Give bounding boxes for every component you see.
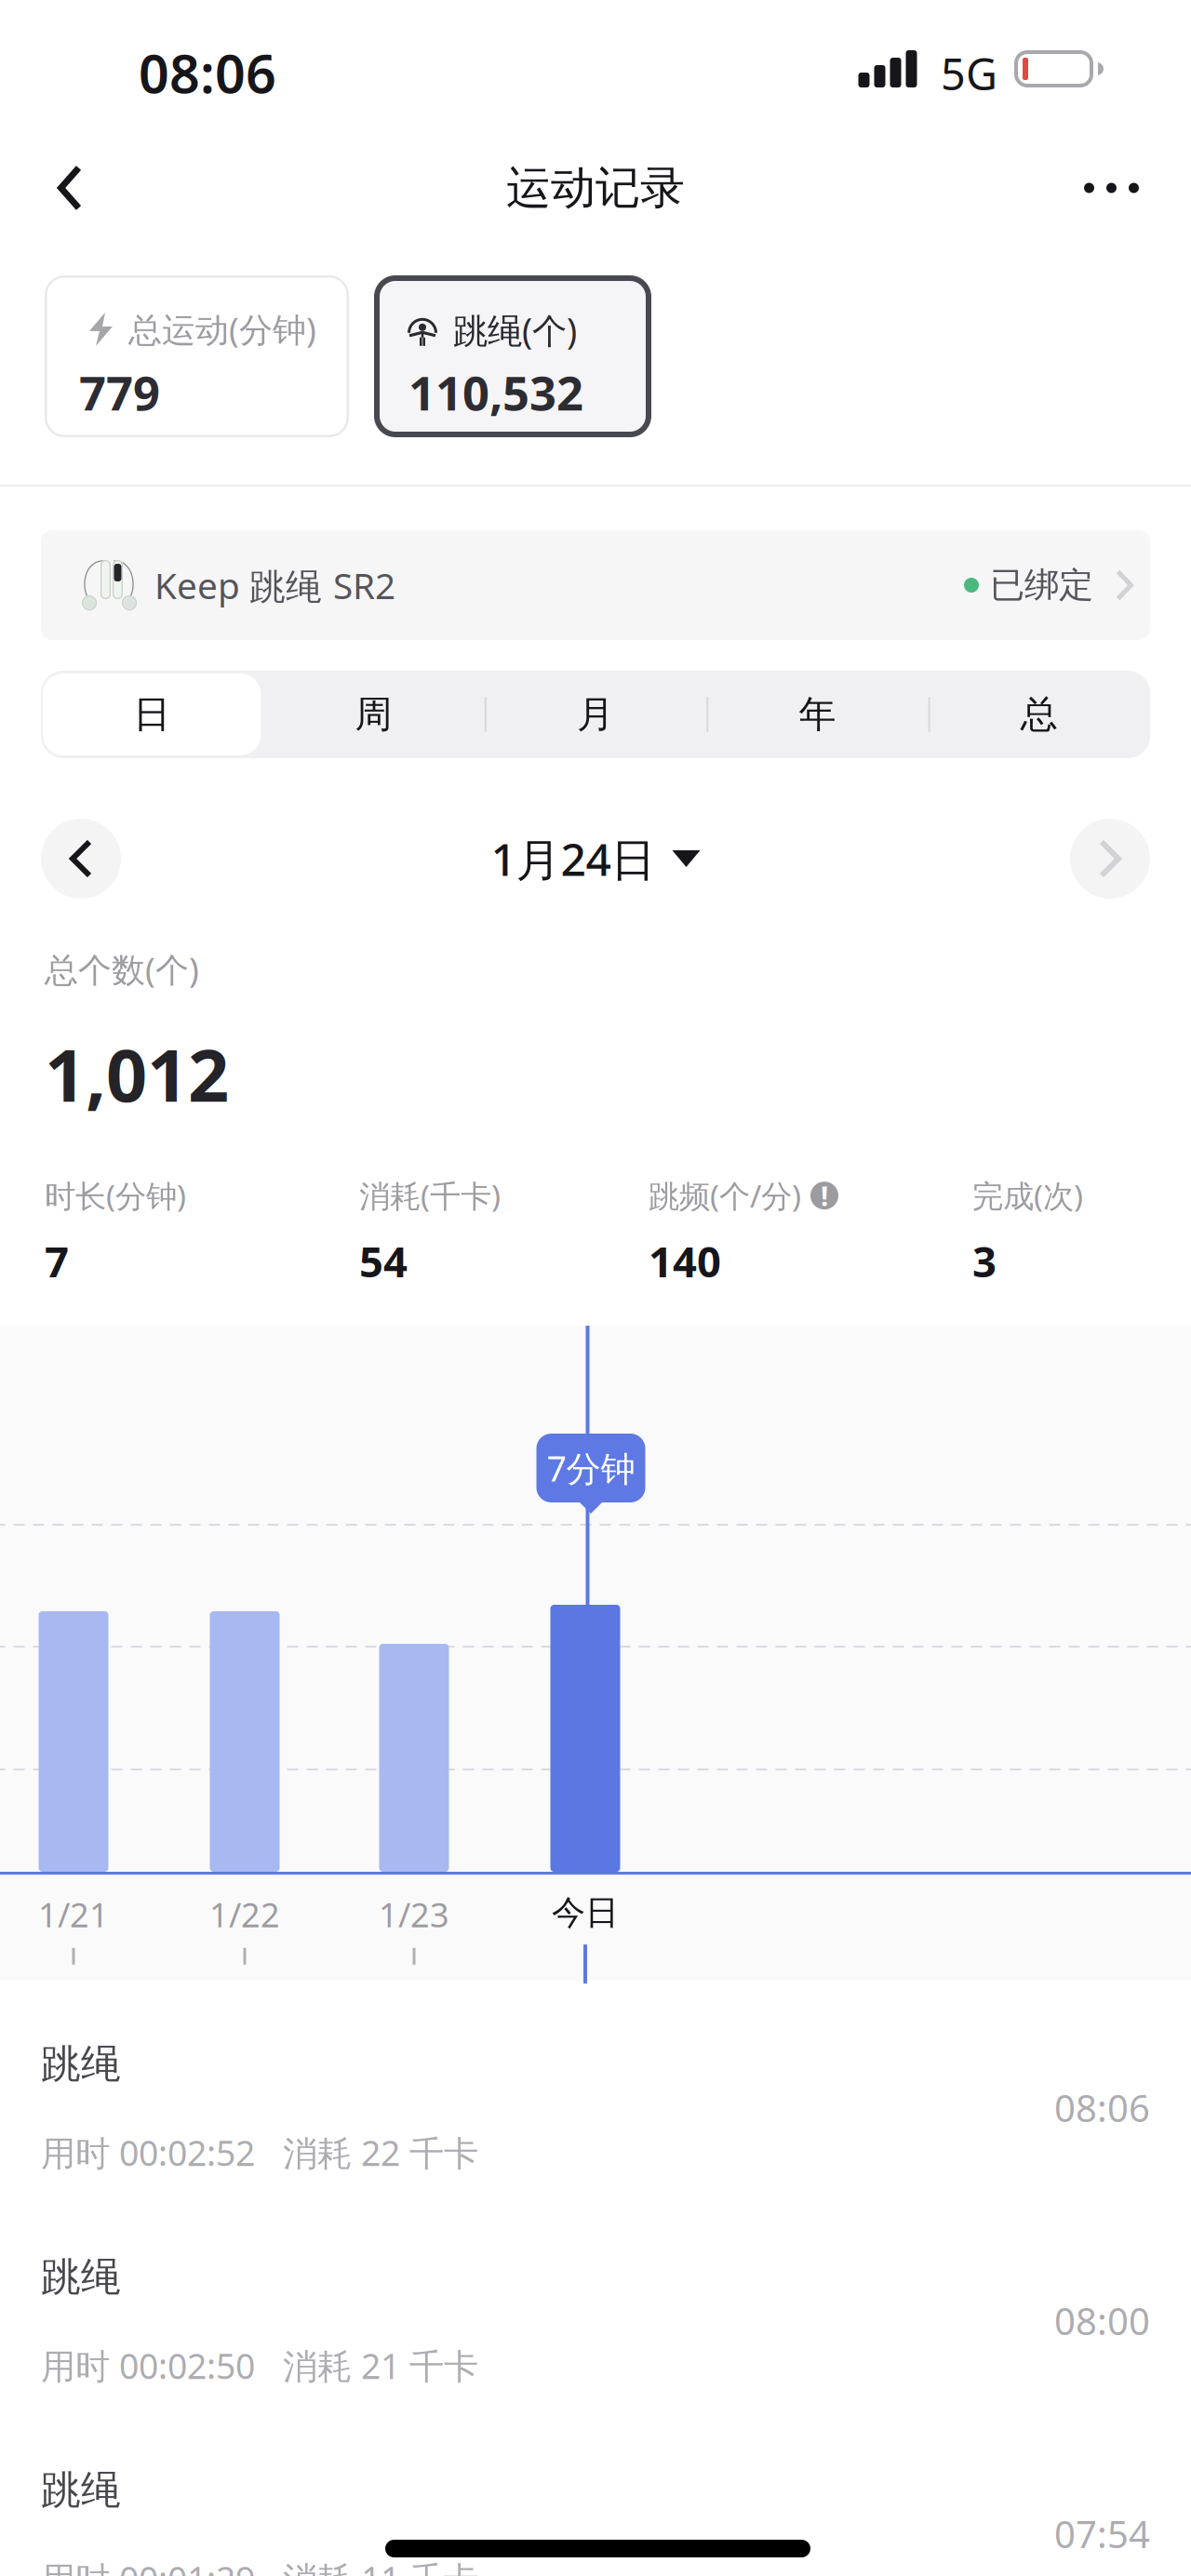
staticText: 7分钟 — [547, 1445, 635, 1491]
staticText: 跳绳 — [41, 2253, 121, 2301]
staticText: 779 — [79, 361, 160, 424]
button[interactable]: Previous day — [41, 819, 121, 899]
button[interactable]: Next day — [1070, 819, 1150, 899]
staticText: 消耗(千卡) — [359, 1175, 501, 1216]
staticText: 1/23 — [379, 1892, 449, 1937]
staticText: 日 — [133, 692, 170, 737]
staticText: 总 — [1021, 692, 1058, 737]
staticText: 消耗 11 千卡 — [283, 2555, 478, 2576]
staticText: 1/22 — [209, 1892, 280, 1937]
button[interactable]: 1月24日 — [491, 819, 700, 899]
staticText: 跳绳 — [41, 2466, 121, 2515]
button[interactable]: Back — [30, 141, 110, 234]
button[interactable]: 日 — [41, 671, 263, 758]
staticText: 5G — [941, 45, 997, 102]
staticText: 1,012 — [45, 1026, 229, 1122]
staticText: 完成(次) — [972, 1175, 1083, 1216]
staticText: ! — [821, 1177, 828, 1214]
button[interactable]: 月 — [485, 671, 706, 758]
button[interactable]: 周 — [263, 671, 485, 758]
staticText: 周 — [355, 692, 392, 737]
staticText: 跳频(个/分) — [649, 1175, 801, 1216]
staticText: 用时 00:02:52 — [41, 2129, 255, 2176]
button[interactable]: 跳绳(个) — [374, 275, 651, 437]
staticText: 7 — [45, 1233, 69, 1289]
staticText: 消耗 21 千卡 — [283, 2342, 478, 2389]
staticText: 1/21 — [38, 1892, 109, 1937]
staticText: 1月24日 — [491, 829, 656, 888]
staticText: 时长(分钟) — [45, 1175, 186, 1216]
staticText: 跳绳 — [41, 2040, 121, 2088]
staticText: 140 — [649, 1233, 721, 1289]
staticText: 运动记录 — [506, 160, 685, 215]
staticText: 3 — [972, 1233, 997, 1289]
staticText: 总运动(分钟) — [128, 307, 316, 351]
staticText: 月 — [577, 692, 614, 737]
staticText: 消耗 22 千卡 — [283, 2129, 478, 2176]
button[interactable]: Keep 跳绳 SR2 — [41, 530, 1150, 640]
staticText: 今日 — [552, 1892, 619, 1933]
staticText: 已绑定 — [990, 564, 1093, 607]
staticText: 54 — [359, 1233, 408, 1289]
staticText: 110,532 — [408, 361, 583, 424]
staticText: 用时 00:01:29 — [41, 2555, 255, 2576]
staticText: 08:06 — [139, 37, 276, 108]
button[interactable]: More — [1060, 141, 1163, 234]
button[interactable]: 总 — [928, 671, 1150, 758]
staticText: 年 — [799, 692, 836, 737]
button[interactable]: About jump rate — [810, 1182, 838, 1209]
button[interactable]: 跳绳 — [0, 2216, 1191, 2425]
staticText: 总个数(个) — [45, 947, 199, 992]
staticText: 跳绳(个) — [453, 307, 577, 353]
staticText: 07:54 — [1054, 2509, 1150, 2558]
button[interactable]: 跳绳 — [0, 2429, 1191, 2576]
button[interactable]: 总运动(分钟) — [45, 275, 349, 437]
staticText: 08:00 — [1054, 2296, 1150, 2345]
button[interactable]: 年 — [706, 671, 928, 758]
staticText: Keep 跳绳 SR2 — [154, 561, 395, 609]
staticText: 08:06 — [1054, 2083, 1150, 2132]
button[interactable]: 跳绳 — [0, 2003, 1191, 2212]
staticText: 用时 00:02:50 — [41, 2342, 255, 2389]
